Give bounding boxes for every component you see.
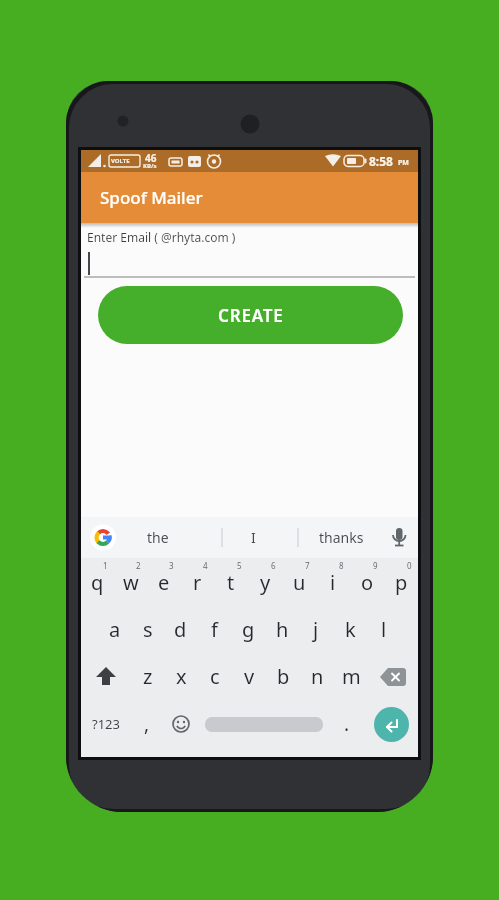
button[interactable]: x bbox=[164, 653, 198, 700]
staticText: 9 bbox=[373, 560, 378, 571]
staticText: c bbox=[210, 663, 220, 690]
button[interactable]: ?123 bbox=[81, 700, 131, 748]
staticText: m bbox=[342, 663, 361, 690]
staticText: b bbox=[277, 663, 290, 690]
button[interactable] bbox=[81, 653, 131, 700]
staticText: 5 bbox=[237, 560, 242, 571]
button[interactable]: . bbox=[329, 700, 365, 748]
button[interactable]: d bbox=[164, 606, 197, 653]
staticText: k bbox=[345, 616, 356, 643]
staticText: 3 bbox=[169, 560, 174, 571]
button[interactable]: l bbox=[367, 606, 401, 653]
button[interactable]: u bbox=[282, 558, 316, 606]
button[interactable]: t bbox=[214, 558, 248, 606]
staticText: f bbox=[211, 616, 218, 643]
button[interactable]: m bbox=[334, 653, 368, 700]
button[interactable]: i bbox=[316, 558, 350, 606]
button[interactable]: CREATE bbox=[98, 286, 403, 344]
button[interactable]: c bbox=[198, 653, 232, 700]
button[interactable] bbox=[163, 700, 199, 748]
button[interactable]: o bbox=[350, 558, 384, 606]
button[interactable]: q bbox=[81, 558, 114, 606]
button[interactable]: w bbox=[114, 558, 147, 606]
button[interactable]: f bbox=[197, 606, 231, 653]
staticText: d bbox=[174, 616, 187, 643]
staticText: 4 bbox=[203, 560, 208, 571]
staticText: Enter Email ( @rhyta.com ) bbox=[87, 229, 236, 245]
staticText: PM bbox=[398, 158, 409, 168]
staticText: p bbox=[395, 569, 408, 596]
button[interactable]: y bbox=[248, 558, 282, 606]
button[interactable]: v bbox=[232, 653, 266, 700]
staticText: j bbox=[313, 616, 319, 643]
staticText: thanks bbox=[319, 528, 364, 547]
staticText: e bbox=[158, 569, 170, 596]
staticText: 7 bbox=[305, 560, 310, 571]
staticText: . bbox=[344, 711, 350, 737]
staticText: , bbox=[144, 711, 150, 737]
button[interactable]: h bbox=[265, 606, 299, 653]
button[interactable]: p bbox=[384, 558, 418, 606]
staticText: i bbox=[330, 569, 336, 596]
staticText: CREATE bbox=[218, 304, 284, 327]
button[interactable]: , bbox=[131, 700, 163, 748]
button[interactable] bbox=[199, 700, 329, 748]
button[interactable]: e bbox=[147, 558, 180, 606]
button[interactable]: b bbox=[266, 653, 300, 700]
staticText: 0 bbox=[407, 560, 412, 571]
button[interactable]: a bbox=[98, 606, 131, 653]
staticText: y bbox=[260, 569, 271, 596]
staticText: v bbox=[244, 663, 255, 690]
staticText: 8:58 bbox=[369, 153, 393, 169]
staticText: ?123 bbox=[92, 715, 120, 733]
staticText: a bbox=[109, 616, 121, 643]
staticText: h bbox=[276, 616, 289, 643]
staticText: u bbox=[293, 569, 306, 596]
staticText: q bbox=[91, 569, 104, 596]
staticText: t bbox=[227, 569, 235, 596]
staticText: r bbox=[193, 569, 202, 596]
button[interactable]: k bbox=[333, 606, 367, 653]
button[interactable] bbox=[368, 653, 418, 700]
button[interactable]: the bbox=[105, 517, 210, 558]
staticText: o bbox=[361, 569, 374, 596]
staticText: 8 bbox=[339, 560, 344, 571]
staticText: 6 bbox=[271, 560, 276, 571]
staticText: I bbox=[251, 528, 256, 547]
staticText: z bbox=[143, 663, 153, 690]
button[interactable]: n bbox=[300, 653, 334, 700]
button[interactable]: r bbox=[180, 558, 214, 606]
staticText: VOLTE bbox=[111, 157, 130, 165]
staticText: 1 bbox=[103, 560, 108, 571]
button[interactable]: z bbox=[131, 653, 164, 700]
button[interactable]: s bbox=[131, 606, 164, 653]
button[interactable]: I bbox=[222, 517, 284, 558]
staticText: g bbox=[242, 616, 255, 643]
button[interactable]: thanks bbox=[298, 517, 384, 558]
staticText: l bbox=[381, 616, 387, 643]
staticText: Spoof Mailer bbox=[100, 186, 203, 209]
staticText: the bbox=[147, 528, 169, 547]
staticText: s bbox=[143, 616, 153, 643]
button[interactable] bbox=[365, 700, 418, 748]
staticText: x bbox=[176, 663, 187, 690]
button[interactable]: g bbox=[231, 606, 265, 653]
staticText: 2 bbox=[136, 560, 141, 571]
button[interactable]: j bbox=[299, 606, 333, 653]
staticText: 46 bbox=[145, 151, 157, 165]
staticText: w bbox=[123, 569, 139, 596]
staticText: KB/s bbox=[143, 162, 157, 170]
staticText: n bbox=[311, 663, 324, 690]
